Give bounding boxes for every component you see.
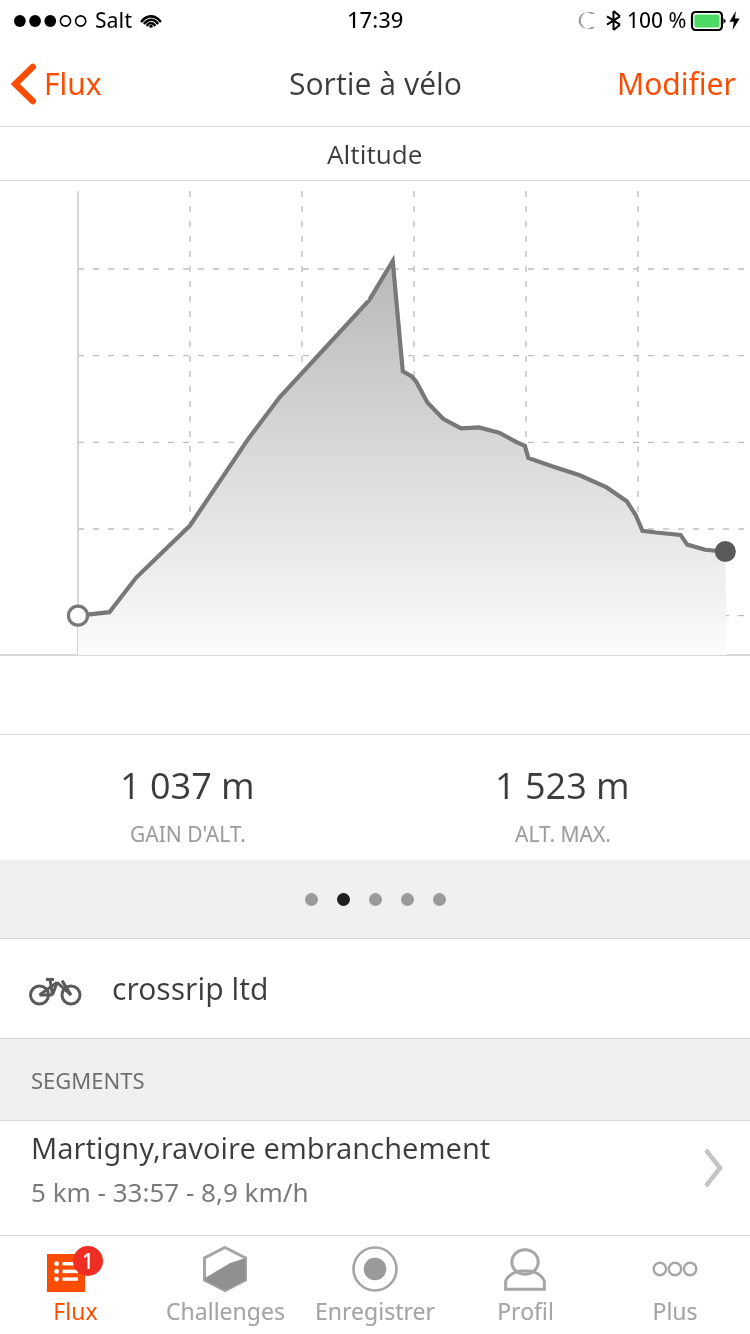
staticText: SEGMENTS	[31, 1065, 145, 1095]
staticText: Martigny,ravoire embranchement	[31, 1128, 491, 1167]
staticText: Altitude	[327, 136, 423, 171]
staticText: 100 %	[627, 6, 687, 35]
other: Plus	[647, 1259, 703, 1279]
staticText: Flux	[53, 1295, 98, 1326]
button[interactable]: crossrip ltd	[0, 939, 750, 1038]
other: Profil	[503, 1247, 547, 1291]
staticText: Plus	[652, 1295, 698, 1326]
other: Challenges	[203, 1246, 247, 1292]
button[interactable]: 1	[0, 1236, 150, 1334]
staticText: Enregistrer	[315, 1295, 435, 1326]
button[interactable]: Flux	[0, 53, 116, 114]
staticText: Profil	[497, 1295, 554, 1326]
button[interactable]: Plus	[600, 1236, 750, 1334]
staticText: Sortie à vélo	[289, 63, 462, 104]
staticText: crossrip ltd	[112, 968, 269, 1009]
staticText: 5 km - 33:57 - 8,9 km/h	[31, 1174, 309, 1209]
staticText: GAIN D'ALT.	[130, 820, 246, 849]
button[interactable]: Martigny,ravoire embranchement	[0, 1121, 750, 1215]
staticText: 1 523 m	[495, 761, 630, 810]
staticText: Flux	[44, 63, 102, 104]
staticText: 1	[82, 1247, 95, 1276]
button[interactable]: Enregistrer	[300, 1236, 450, 1334]
button[interactable]: Challenges	[150, 1236, 300, 1334]
other: Enregistrer	[352, 1246, 398, 1292]
button[interactable]: Profil	[450, 1236, 600, 1334]
staticText: ALT. MAX.	[515, 820, 611, 849]
staticText: 1 037 m	[120, 761, 255, 810]
staticText: 17:39	[347, 4, 404, 34]
staticText: Modifier	[617, 63, 736, 104]
button[interactable]: Modifier	[603, 53, 750, 114]
staticText: Challenges	[166, 1295, 285, 1326]
staticText: Salt	[95, 6, 133, 35]
